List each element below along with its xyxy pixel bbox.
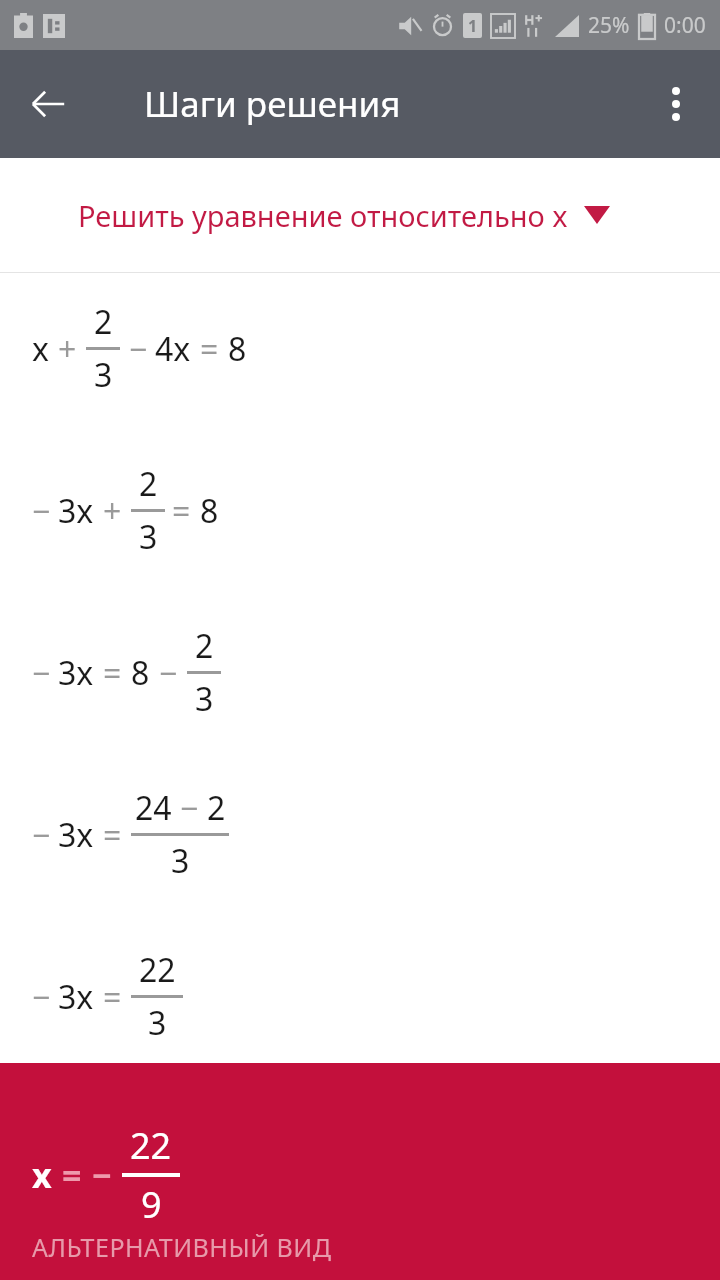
staticText: =	[103, 975, 122, 1019]
staticText: −	[32, 651, 51, 695]
staticText: 8	[131, 651, 150, 695]
staticText: +	[103, 489, 122, 533]
staticText: 3	[94, 353, 113, 397]
staticText: АЛЬТЕРНАТИВНЫЙ ВИД	[32, 1230, 332, 1264]
staticText: 3	[148, 1001, 167, 1045]
staticText: 3x	[58, 813, 94, 857]
staticText: 3	[139, 515, 158, 559]
staticText: 4x	[155, 327, 191, 371]
staticText: 3x	[58, 651, 94, 695]
staticText: =	[200, 327, 219, 371]
staticText: =	[62, 1152, 82, 1198]
staticText: 22	[130, 1121, 172, 1170]
button[interactable]: More options	[642, 70, 710, 138]
staticText: 2	[94, 300, 113, 344]
staticText: −	[159, 651, 178, 695]
staticText: x	[32, 327, 49, 371]
staticText: Шаги решения	[144, 80, 401, 128]
staticText: 2	[139, 462, 158, 506]
button[interactable]: Решить уравнение относительно x	[0, 158, 720, 272]
staticText: −	[32, 813, 51, 857]
staticText: 3	[195, 677, 214, 721]
staticText: 2	[195, 624, 214, 668]
staticText: 8	[200, 489, 219, 533]
staticText: =	[103, 651, 122, 695]
staticText: Решить уравнение относительно x	[78, 196, 568, 235]
staticText: −	[180, 786, 199, 830]
button[interactable]: АЛЬТЕРНАТИВНЫЙ ВИД	[0, 1230, 720, 1280]
button[interactable]: Back	[14, 70, 82, 138]
staticText: −	[32, 975, 51, 1019]
staticText: =	[103, 813, 122, 857]
staticText: 3x	[58, 489, 94, 533]
staticText: 9	[141, 1180, 162, 1229]
staticText: 8	[228, 327, 247, 371]
staticText: =	[172, 489, 191, 533]
staticText: 25%	[588, 11, 630, 40]
staticText: −	[32, 489, 51, 533]
staticText: +	[58, 327, 77, 371]
staticText: x	[32, 1152, 52, 1198]
staticText: 3x	[58, 975, 94, 1019]
staticText: 3	[171, 839, 190, 883]
staticText: 2	[207, 786, 226, 830]
staticText: −	[129, 327, 148, 371]
staticText: −	[92, 1152, 112, 1198]
staticText: 22	[139, 948, 176, 992]
staticText: 0:00	[664, 11, 706, 40]
staticText: 1	[468, 15, 478, 37]
staticText: 24	[135, 786, 172, 830]
